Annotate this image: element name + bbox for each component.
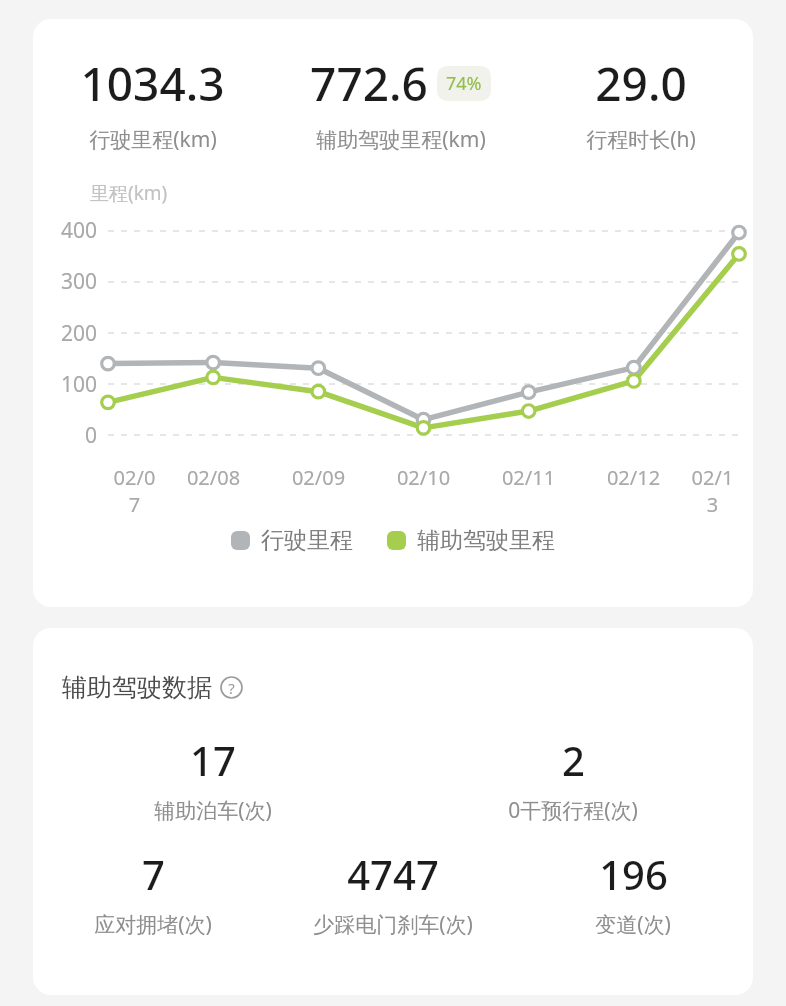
staticText: 0干预行程(次) [508,796,638,825]
staticText: 变道(次) [595,910,671,939]
button[interactable]: 772.6 [272,52,529,154]
button[interactable]: 1034.3 [33,52,272,154]
button[interactable]: 4747 [273,847,513,939]
staticText: 400 [60,216,97,245]
staticText: 2 [562,733,585,787]
staticText: 772.6 [310,52,428,115]
staticText: 7 [142,847,165,901]
staticText: 辅助驾驶里程(km) [316,125,486,154]
staticText: 02/07 [108,464,161,518]
button[interactable]: 2 [393,733,753,825]
button[interactable]: 行驶里程 [231,526,353,555]
staticText: 0 [84,421,97,450]
staticText: 02/08 [161,464,266,491]
staticText: 应对拥堵(次) [94,910,212,939]
staticText: 200 [60,319,97,348]
staticText: 02/10 [371,464,476,491]
staticText: 74% [446,71,482,96]
staticText: 02/09 [266,464,371,491]
staticText: 行程时长(h) [586,125,696,154]
staticText: 少踩电门刹车(次) [313,910,473,939]
staticText: 行驶里程 [261,526,353,555]
button[interactable]: 29.0 [529,52,753,154]
staticText: 100 [60,370,97,399]
staticText: 辅助泊车(次) [154,796,272,825]
staticText: 4747 [347,847,439,901]
staticText: 02/11 [476,464,581,491]
staticText: 17 [190,733,236,787]
staticText: 里程(km) [90,180,168,206]
button[interactable]: 7 [33,847,273,939]
staticText: 1034.3 [80,52,225,115]
staticText: ? [228,678,235,698]
staticText: 行驶里程(km) [89,125,217,154]
staticText: 300 [60,267,97,296]
staticText: 02/13 [686,464,739,518]
button[interactable]: 196 [513,847,753,939]
button[interactable]: 17 [33,733,393,825]
button[interactable]: 辅助驾驶里程 [387,526,555,555]
staticText: 29.0 [595,52,687,115]
staticText: 辅助驾驶里程 [417,526,555,555]
staticText: 196 [599,847,668,901]
staticText: 02/12 [581,464,686,491]
button[interactable]: Help about assisted driving data [220,676,243,699]
staticText: 辅助驾驶数据 [62,672,212,703]
button[interactable]: 辅助驾驶数据 [62,672,243,703]
